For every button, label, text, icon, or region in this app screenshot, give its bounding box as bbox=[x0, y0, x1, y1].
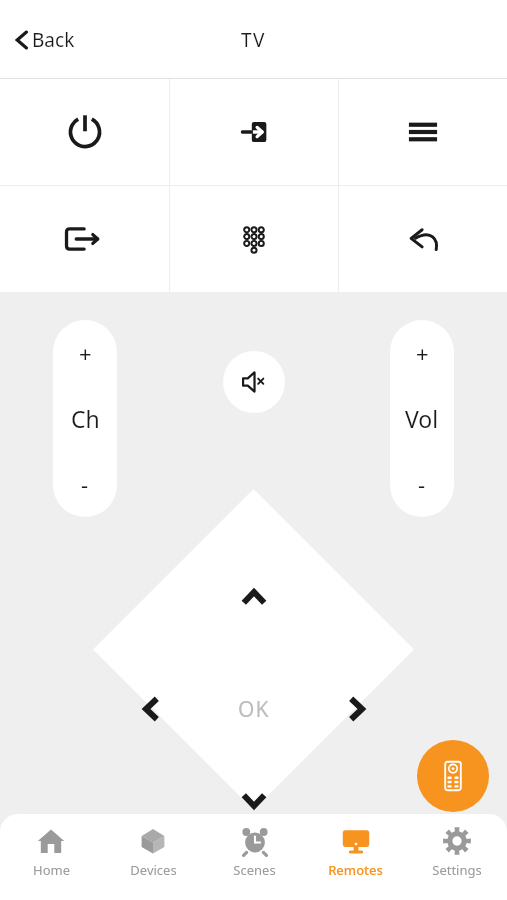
button[interactable]: Menu bbox=[339, 79, 507, 185]
button[interactable]: Remote bbox=[417, 740, 489, 812]
staticText: Scenes bbox=[233, 861, 276, 879]
button[interactable]: Right bbox=[328, 681, 384, 737]
button[interactable]: Settings bbox=[406, 814, 507, 900]
staticText: OK bbox=[238, 695, 270, 724]
button[interactable]: Back bbox=[8, 21, 81, 59]
staticText: Devices bbox=[130, 861, 177, 879]
button[interactable]: Up bbox=[226, 570, 282, 626]
button[interactable]: OK bbox=[216, 671, 292, 747]
button[interactable]: Scenes bbox=[204, 814, 305, 900]
staticText: Ch bbox=[71, 403, 100, 434]
button[interactable]: Keypad bbox=[170, 186, 338, 292]
button[interactable]: Power bbox=[0, 79, 169, 185]
staticText: Remotes bbox=[328, 861, 383, 879]
button[interactable]: Return bbox=[339, 186, 507, 292]
button[interactable]: Devices bbox=[102, 814, 204, 900]
staticText: Home bbox=[33, 861, 70, 879]
staticText: - bbox=[418, 469, 426, 499]
staticText: Settings bbox=[432, 861, 482, 879]
button[interactable]: Down bbox=[226, 772, 282, 828]
button[interactable]: + bbox=[53, 320, 117, 517]
button[interactable]: Input source bbox=[170, 79, 338, 185]
staticText: Back bbox=[32, 27, 75, 53]
button[interactable]: Home bbox=[0, 814, 102, 900]
staticText: - bbox=[81, 469, 89, 499]
button[interactable]: + bbox=[390, 320, 454, 517]
button[interactable]: Mute bbox=[223, 351, 285, 413]
button[interactable]: Exit bbox=[0, 186, 169, 292]
staticText: Vol bbox=[405, 403, 439, 434]
staticText: TV bbox=[241, 27, 266, 53]
button[interactable]: Left bbox=[124, 681, 180, 737]
staticText: + bbox=[79, 338, 92, 368]
staticText: + bbox=[416, 338, 429, 368]
button[interactable]: Remotes bbox=[305, 814, 406, 900]
